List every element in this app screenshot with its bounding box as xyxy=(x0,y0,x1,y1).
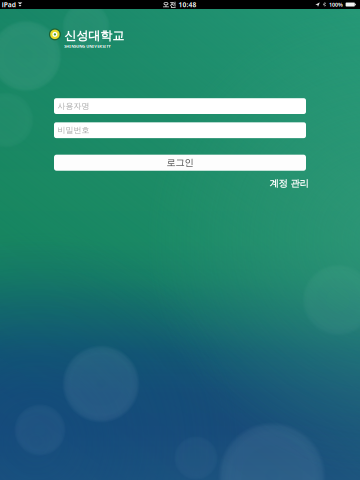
staticText: 신성대학교 xyxy=(64,28,124,43)
staticText: iPad xyxy=(2,0,16,9)
staticText: 비밀번호 xyxy=(57,125,89,135)
button[interactable]: 로그인 xyxy=(54,155,306,171)
button[interactable]: 계정 관리 xyxy=(270,178,309,189)
staticText: SHINSUNG UNIVERSITY xyxy=(64,43,111,49)
staticText: 로그인 xyxy=(166,157,193,168)
staticText: 오전 10:48 xyxy=(163,0,197,9)
staticText: 사용자명 xyxy=(57,101,89,111)
staticText: 계정 관리 xyxy=(270,178,309,189)
staticText: 100% xyxy=(329,1,343,8)
